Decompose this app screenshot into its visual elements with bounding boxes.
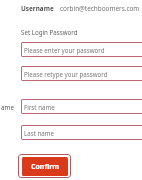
staticText: ame — [1, 103, 15, 112]
staticText: Confirm — [31, 162, 60, 172]
staticText: Please retype your password — [24, 70, 108, 78]
staticText: Set Login Password — [21, 28, 78, 36]
button[interactable]: Please enter your password — [21, 42, 142, 57]
staticText: First name — [24, 103, 55, 111]
staticText: Please enter your password — [24, 46, 105, 54]
button[interactable]: Please retype your password — [21, 66, 142, 81]
button[interactable]: Last name — [21, 125, 142, 140]
staticText: Username — [21, 4, 54, 13]
staticText: Last name — [24, 129, 55, 137]
button[interactable]: First name — [21, 99, 142, 114]
button[interactable]: Confirm — [18, 154, 71, 178]
staticText: corbin@techboomers.com — [60, 4, 140, 13]
